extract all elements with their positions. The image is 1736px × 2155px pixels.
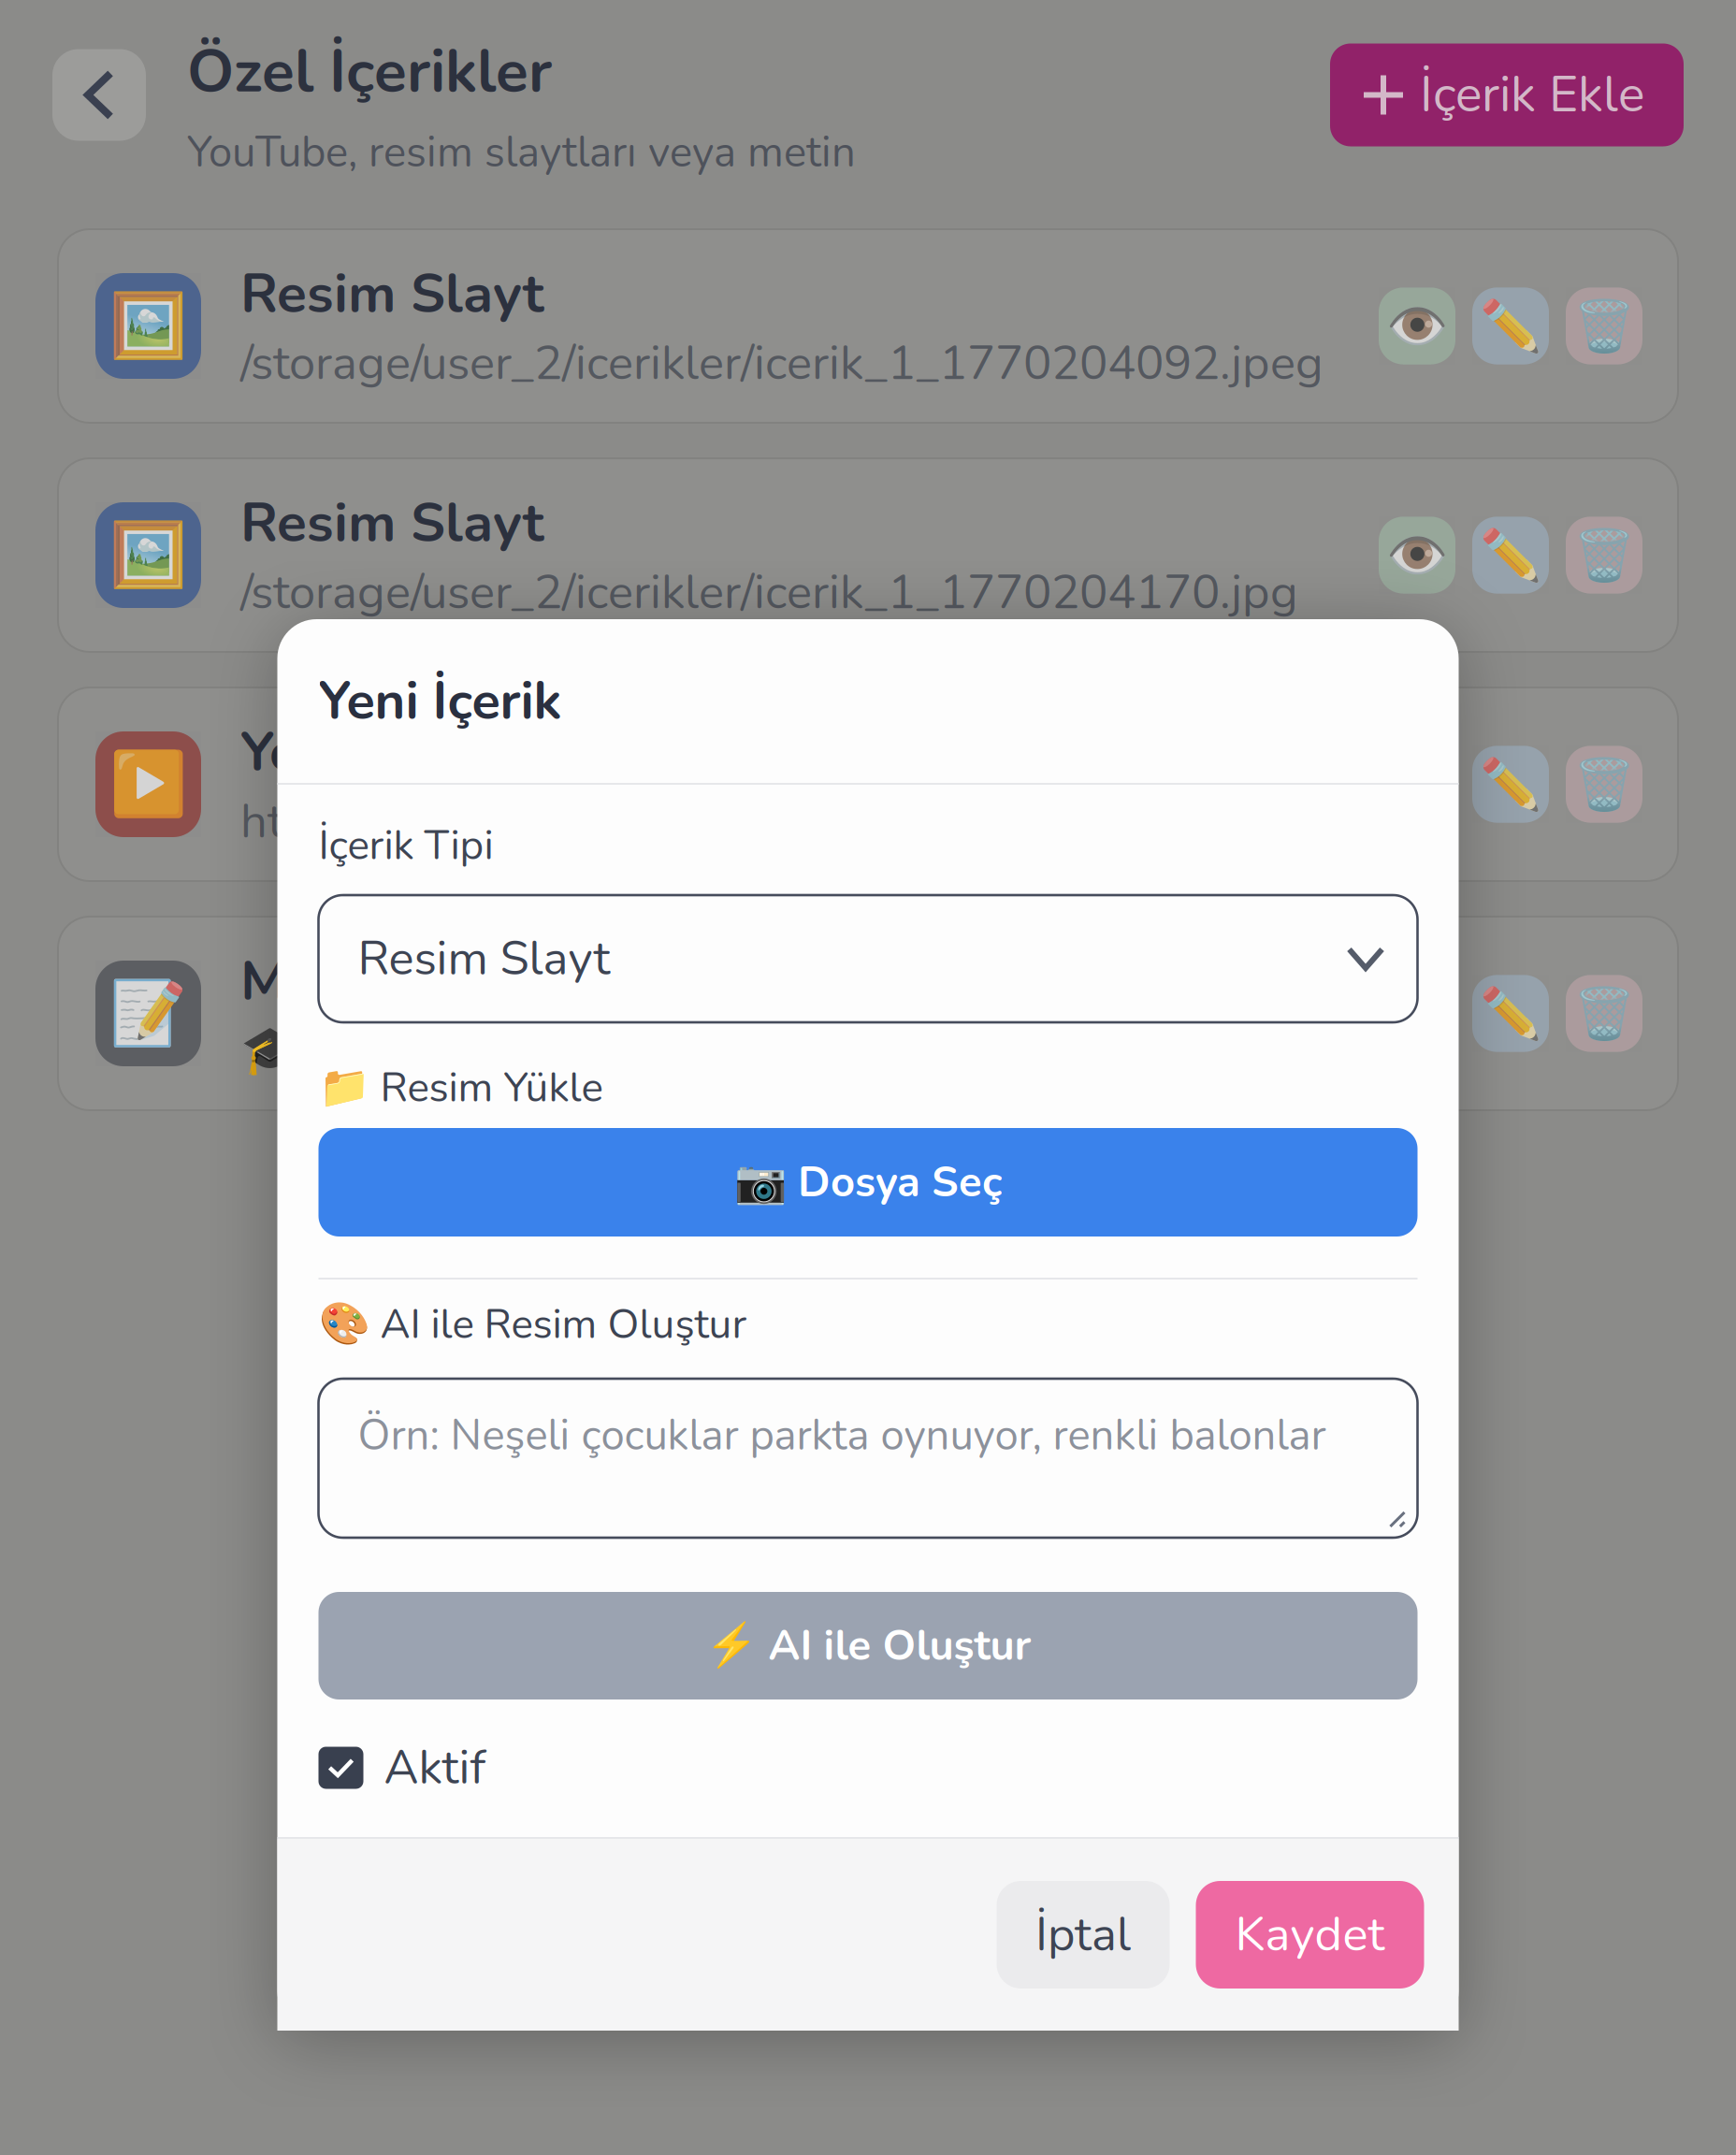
staticText: 🗑️ [1573, 984, 1635, 1043]
staticText: ✏️ [1480, 755, 1541, 814]
staticText: ✏️ [1480, 984, 1541, 1043]
staticText: Özel İçerikler [187, 31, 552, 112]
button[interactable]: Delete [1566, 975, 1642, 1052]
button[interactable]: Kaydet [1196, 1881, 1424, 1989]
staticText: Aktif [384, 1735, 486, 1800]
staticText: 👁️ [1386, 297, 1448, 355]
button[interactable]: Aktif [318, 1743, 486, 1792]
staticText: Resim Slayt [240, 485, 544, 560]
button[interactable]: İptal [997, 1881, 1170, 1989]
staticText: 🖼️ [109, 519, 187, 592]
staticText: /storage/user_2/icerikler/icerik_1_17702… [240, 331, 1324, 396]
button[interactable]: Delete [1566, 517, 1642, 593]
staticText: https://www.youtube.com/watch?v=dQw4w9Wg… [240, 789, 1367, 854]
staticText: 🎓 Ders notları ve açıklamalar [240, 1019, 877, 1083]
button[interactable]: Delete [1566, 288, 1642, 364]
button[interactable]: 📷 Dosya Seç [318, 1128, 1418, 1237]
staticText: Yeni İçerik [318, 665, 562, 737]
button[interactable]: Delete [1566, 746, 1642, 823]
staticText: İçerik Ekle [1420, 61, 1644, 129]
staticText: 🗑️ [1573, 526, 1635, 584]
button[interactable]: Edit [1472, 517, 1549, 593]
staticText: İptal [1035, 1902, 1131, 1967]
staticText: ✏️ [1480, 526, 1541, 584]
button[interactable]: Resim Slayt [318, 895, 1418, 1022]
staticText: Kaydet [1235, 1902, 1385, 1967]
staticText: 🗑️ [1573, 297, 1635, 355]
staticText: Örn: Neşeli çocuklar parkta oynuyor, ren… [358, 1407, 1326, 1465]
staticText: 📁 Resim Yükle [318, 1060, 603, 1116]
staticText: 👁️ [1386, 526, 1448, 584]
button[interactable]: Edit [1472, 288, 1549, 364]
button[interactable]: ⚡ AI ile Oluştur [318, 1592, 1418, 1699]
staticText: ⚡ AI ile Oluştur [705, 1617, 1031, 1675]
staticText: 📷 Dosya Seç [734, 1153, 1002, 1211]
staticText: İçerik Tipi [318, 817, 493, 874]
button[interactable]: Edit [1472, 746, 1549, 823]
staticText: Resim Slayt [240, 256, 544, 331]
button[interactable]: İçerik Ekle [1330, 43, 1684, 146]
staticText: ▶️ [109, 748, 187, 821]
button[interactable]: Edit [1472, 975, 1549, 1052]
staticText: YouTube, resim slaytları veya metin [187, 124, 856, 181]
staticText: 🎨 AI ile Resim Oluştur [318, 1296, 747, 1352]
staticText: Metin İçerik [240, 944, 536, 1018]
button[interactable]: Preview [1379, 288, 1455, 364]
staticText: YouTube Video [240, 714, 623, 789]
staticText: 🗑️ [1573, 755, 1635, 814]
staticText: 📝 [109, 977, 187, 1050]
button[interactable]: Preview [1379, 517, 1455, 593]
staticText: ✏️ [1480, 297, 1541, 355]
staticText: Resim Slayt [358, 926, 610, 991]
staticText: /storage/user_2/icerikler/icerik_1_17702… [240, 560, 1298, 625]
button[interactable]: Back [52, 49, 146, 141]
staticText: 🖼️ [109, 289, 187, 362]
